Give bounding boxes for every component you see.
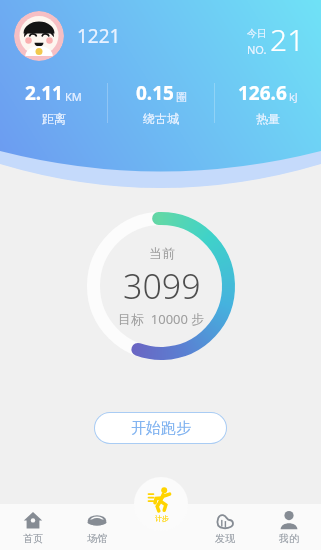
- button[interactable]: 计步 Step counter: [134, 477, 188, 531]
- button[interactable]: 开始跑步: [95, 413, 226, 443]
- staticText: 21: [270, 19, 305, 60]
- staticText: 3099: [123, 263, 201, 309]
- staticText: 1221: [77, 23, 121, 49]
- staticText: 我的: [279, 532, 299, 545]
- staticText: 热量: [256, 111, 280, 126]
- staticText: KM: [65, 89, 82, 104]
- staticText: 当前: [149, 245, 175, 261]
- button[interactable]: Profile avatar: [14, 11, 64, 61]
- button[interactable]: 发现: [193, 504, 257, 550]
- staticText: kJ: [289, 89, 298, 104]
- staticText: 首页: [23, 532, 43, 545]
- staticText: 圈: [176, 90, 187, 104]
- staticText: 开始跑步: [131, 419, 191, 438]
- staticText: 绕古城: [143, 111, 179, 126]
- staticText: 计步: [155, 514, 169, 523]
- staticText: 2.11: [25, 80, 63, 106]
- button[interactable]: 126.6: [215, 75, 321, 131]
- staticText: 0.15: [136, 80, 174, 106]
- staticText: 目标 10000 步: [118, 310, 205, 328]
- button[interactable]: 场馆: [65, 504, 129, 550]
- staticText: 今日: [247, 27, 267, 40]
- staticText: 场馆: [87, 532, 107, 545]
- button[interactable]: 0.15: [108, 75, 214, 131]
- staticText: NO.: [247, 42, 267, 57]
- button[interactable]: 2.11: [0, 75, 107, 131]
- button[interactable]: 首页: [0, 504, 65, 550]
- button[interactable]: 我的: [257, 504, 321, 550]
- staticText: 126.6: [238, 80, 287, 106]
- staticText: 发现: [215, 532, 235, 545]
- staticText: 距离: [42, 111, 66, 126]
